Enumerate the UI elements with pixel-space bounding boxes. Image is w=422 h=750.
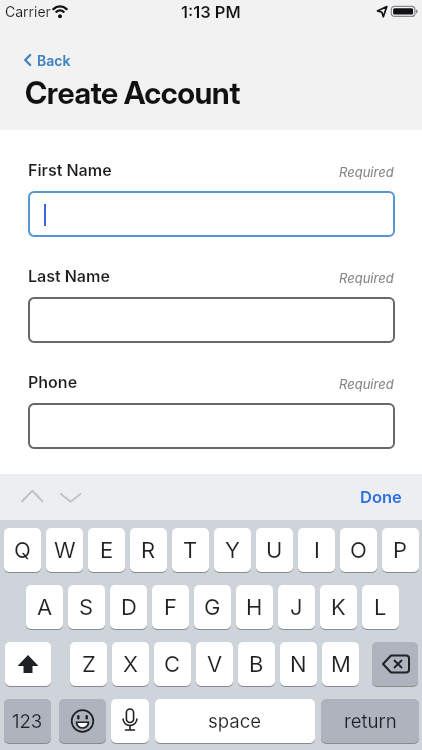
button[interactable]: B: [238, 642, 275, 686]
button[interactable]: O: [340, 528, 377, 572]
staticText: O: [350, 537, 367, 564]
staticText: F: [164, 594, 177, 621]
button[interactable]: L: [362, 585, 399, 629]
staticText: Required: [339, 164, 394, 180]
button[interactable]: Q: [4, 528, 41, 572]
staticText: U: [266, 537, 283, 564]
button[interactable]: [28, 297, 395, 343]
staticText: 1:13 PM: [181, 2, 241, 22]
button[interactable]: N: [280, 642, 317, 686]
button[interactable]: F: [152, 585, 189, 629]
button[interactable]: J: [278, 585, 315, 629]
staticText: Z: [82, 651, 96, 678]
staticText: R: [141, 537, 156, 564]
button[interactable]: D: [110, 585, 147, 629]
staticText: Q: [14, 537, 31, 564]
button[interactable]: X: [112, 642, 149, 686]
button[interactable]: R: [130, 528, 167, 572]
button[interactable]: [5, 642, 51, 686]
staticText: M: [331, 651, 351, 678]
staticText: C: [164, 651, 181, 678]
button[interactable]: I: [298, 528, 335, 572]
staticText: I: [314, 537, 320, 564]
button[interactable]: U: [256, 528, 293, 572]
staticText: Phone: [28, 372, 78, 391]
staticText: B: [249, 651, 264, 678]
staticText: N: [290, 651, 307, 678]
button[interactable]: A: [26, 585, 63, 629]
staticText: S: [79, 594, 94, 621]
button[interactable]: Back: [20, 48, 78, 70]
button[interactable]: [28, 403, 395, 449]
button[interactable]: return: [321, 699, 419, 743]
staticText: First Name: [28, 160, 112, 179]
staticText: Carrier: [5, 3, 51, 20]
button[interactable]: space: [155, 699, 315, 743]
staticText: T: [183, 537, 198, 564]
staticText: Done: [360, 487, 402, 507]
staticText: P: [393, 537, 408, 564]
staticText: V: [207, 651, 223, 678]
staticText: Create Account: [25, 74, 240, 111]
staticText: W: [54, 537, 76, 564]
button[interactable]: [372, 642, 418, 686]
staticText: Y: [225, 537, 240, 564]
button[interactable]: W: [46, 528, 83, 572]
button[interactable]: 123: [4, 699, 51, 743]
staticText: 123: [12, 710, 43, 732]
staticText: K: [331, 594, 346, 621]
staticText: A: [37, 594, 53, 621]
button[interactable]: Y: [214, 528, 251, 572]
staticText: G: [204, 594, 221, 621]
staticText: Last Name: [28, 266, 110, 285]
button[interactable]: C: [154, 642, 191, 686]
button[interactable]: Done: [360, 487, 402, 507]
staticText: Required: [339, 270, 394, 286]
button[interactable]: T: [172, 528, 209, 572]
button[interactable]: E: [88, 528, 125, 572]
button[interactable]: M: [322, 642, 359, 686]
staticText: Back: [37, 52, 71, 69]
staticText: D: [121, 594, 137, 621]
button[interactable]: P: [382, 528, 419, 572]
staticText: space: [208, 710, 262, 732]
button[interactable]: G: [194, 585, 231, 629]
button[interactable]: [59, 699, 106, 743]
staticText: L: [374, 594, 387, 621]
button[interactable]: H: [236, 585, 273, 629]
staticText: H: [246, 594, 263, 621]
button[interactable]: K: [320, 585, 357, 629]
button[interactable]: Z: [70, 642, 107, 686]
staticText: X: [123, 651, 139, 678]
button[interactable]: [111, 699, 149, 743]
button[interactable]: [28, 191, 395, 237]
staticText: Required: [339, 376, 394, 392]
staticText: E: [100, 537, 114, 564]
staticText: J: [290, 594, 303, 621]
staticText: return: [344, 710, 397, 732]
button[interactable]: S: [68, 585, 105, 629]
button[interactable]: V: [196, 642, 233, 686]
